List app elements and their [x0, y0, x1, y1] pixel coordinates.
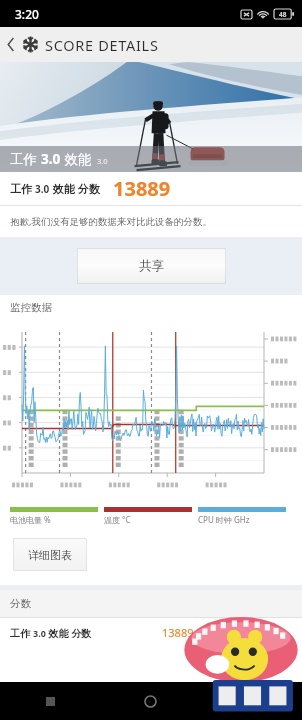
staticText: 3.0 [33, 627, 46, 639]
staticText: 分数 [10, 597, 31, 610]
staticText: 效能 [61, 150, 92, 168]
button[interactable]: Back [0, 27, 22, 62]
button[interactable]: 工作 [0, 618, 302, 647]
staticText: 效能 分数 [46, 626, 92, 640]
staticText: 共享 [139, 258, 164, 274]
staticText: 工作 [10, 181, 35, 196]
staticText: 监控数据 [10, 301, 52, 314]
staticText: 48 [279, 10, 287, 19]
staticText: 3:20 [15, 6, 39, 22]
staticText: SCORE DETAILS [45, 35, 159, 55]
staticText: 13889 [113, 175, 171, 202]
staticText: 抱歉,我们没有足够的数据来对比此设备的分数。 [10, 215, 213, 228]
staticText: 3.0 [41, 150, 61, 168]
button[interactable]: Home [100, 682, 201, 720]
staticText: CPU 时钟 GHz [198, 514, 250, 525]
staticText: 3.0 [35, 182, 50, 196]
staticText: 工作 [10, 150, 41, 168]
staticText: 详细图表 [28, 548, 72, 562]
staticText: 工作 [10, 626, 33, 640]
button[interactable]: 共享 [77, 248, 226, 284]
staticText: 3.0 [97, 156, 108, 166]
button[interactable]: Recents [0, 682, 100, 720]
staticText: 效能 分数 [50, 181, 100, 196]
staticText: 温度 °C [104, 514, 131, 525]
staticText: 13889 [162, 625, 194, 640]
button[interactable]: Back [201, 682, 302, 720]
staticText: 电池电量 % [10, 514, 51, 525]
button[interactable]: 详细图表 [13, 538, 87, 571]
